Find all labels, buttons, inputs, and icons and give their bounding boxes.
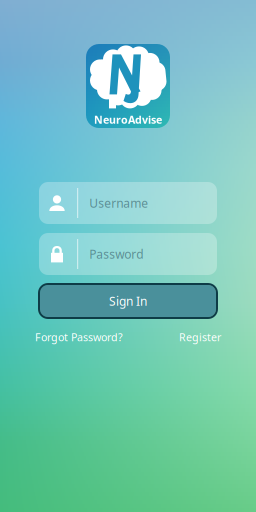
staticText: NeuroAdvise — [94, 112, 162, 127]
staticText: Password — [89, 246, 143, 262]
staticText: Sign In — [109, 293, 147, 309]
button[interactable]: Register — [179, 330, 221, 344]
staticText: Register — [179, 330, 221, 344]
button[interactable]: Username — [39, 182, 217, 224]
button[interactable]: Sign In — [39, 284, 217, 318]
staticText: Username — [89, 195, 148, 211]
button[interactable]: Password — [39, 233, 217, 275]
staticText: Forgot Password? — [35, 330, 123, 344]
button[interactable]: Forgot Password? — [35, 330, 123, 344]
